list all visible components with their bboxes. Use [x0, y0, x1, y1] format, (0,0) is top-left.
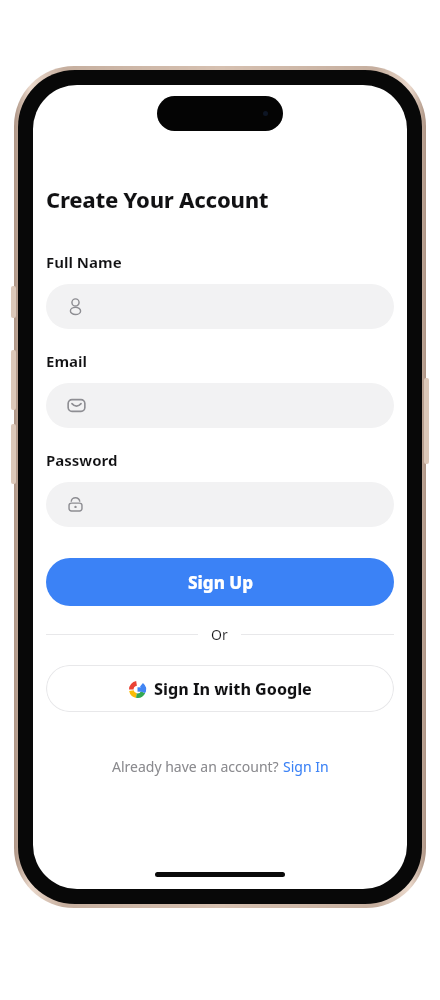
staticText: Sign Up [188, 571, 253, 594]
staticText: Create Your Account [46, 184, 269, 214]
staticText: Password [46, 450, 118, 470]
staticText: Already have an account? [112, 757, 283, 776]
button[interactable]: Sign In with Google [46, 665, 394, 712]
staticText: Email [46, 351, 87, 371]
button[interactable]: Sign Up [46, 558, 394, 606]
staticText: Or [211, 625, 228, 644]
staticText: Full Name [46, 252, 122, 272]
button[interactable]: Full name field [46, 284, 394, 329]
button[interactable]: Email field [46, 383, 394, 428]
staticText: Sign In with Google [154, 678, 312, 700]
button[interactable]: Sign In [283, 757, 329, 776]
staticText: Sign In [283, 757, 329, 776]
button[interactable]: Password field [46, 482, 394, 527]
